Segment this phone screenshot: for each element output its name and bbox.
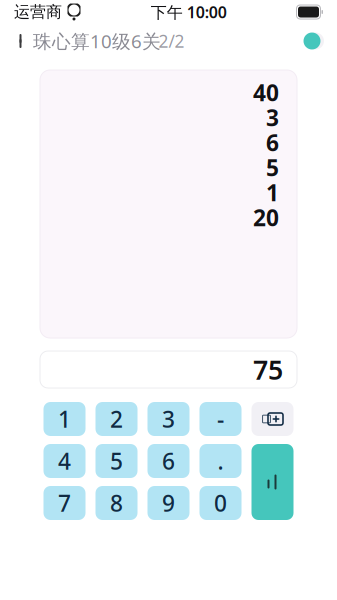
staticText: 3: [266, 102, 279, 132]
staticText: 6: [162, 446, 175, 476]
staticText: 6: [266, 127, 279, 157]
staticText: 2/2: [158, 29, 184, 52]
button[interactable]: 3: [147, 402, 189, 436]
staticText: -: [217, 404, 224, 434]
button[interactable]: 9: [147, 486, 189, 520]
staticText: 1: [58, 404, 71, 434]
button[interactable]: 0: [199, 486, 241, 520]
staticText: 7: [58, 488, 71, 518]
button[interactable]: Delete: [251, 402, 293, 436]
staticText: 20: [253, 202, 279, 232]
staticText: 1: [266, 177, 279, 207]
staticText: 9: [162, 488, 175, 518]
button[interactable]: 8: [95, 486, 137, 520]
staticText: 3: [162, 404, 175, 434]
button[interactable]: 6: [147, 444, 189, 478]
staticText: 2: [110, 404, 123, 434]
button[interactable]: 1: [43, 402, 85, 436]
button[interactable]: Confirm: [251, 444, 293, 520]
staticText: 40: [253, 77, 279, 107]
button[interactable]: 珠心算10级6关: [0, 21, 167, 61]
staticText: 75: [253, 352, 283, 387]
button[interactable]: 2: [95, 402, 137, 436]
staticText: 下午 10:00: [151, 1, 227, 23]
staticText: .: [217, 446, 223, 476]
button[interactable]: 5: [95, 444, 137, 478]
staticText: 珠心算10级6关: [33, 29, 161, 53]
button[interactable]: -: [199, 402, 241, 436]
staticText: 运营商: [14, 2, 62, 22]
staticText: 8: [110, 488, 123, 518]
button[interactable]: 7: [43, 486, 85, 520]
staticText: 0: [214, 488, 227, 518]
staticText: 5: [266, 152, 279, 182]
button[interactable]: Toggle dark mode: [294, 24, 337, 57]
button[interactable]: .: [199, 444, 241, 478]
staticText: 4: [58, 446, 71, 476]
button[interactable]: 4: [43, 444, 85, 478]
staticText: 5: [110, 446, 123, 476]
